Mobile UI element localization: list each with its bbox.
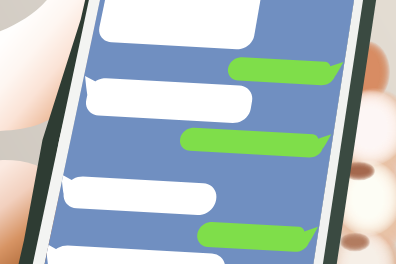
other: Messaging conversation [0, 0, 396, 264]
